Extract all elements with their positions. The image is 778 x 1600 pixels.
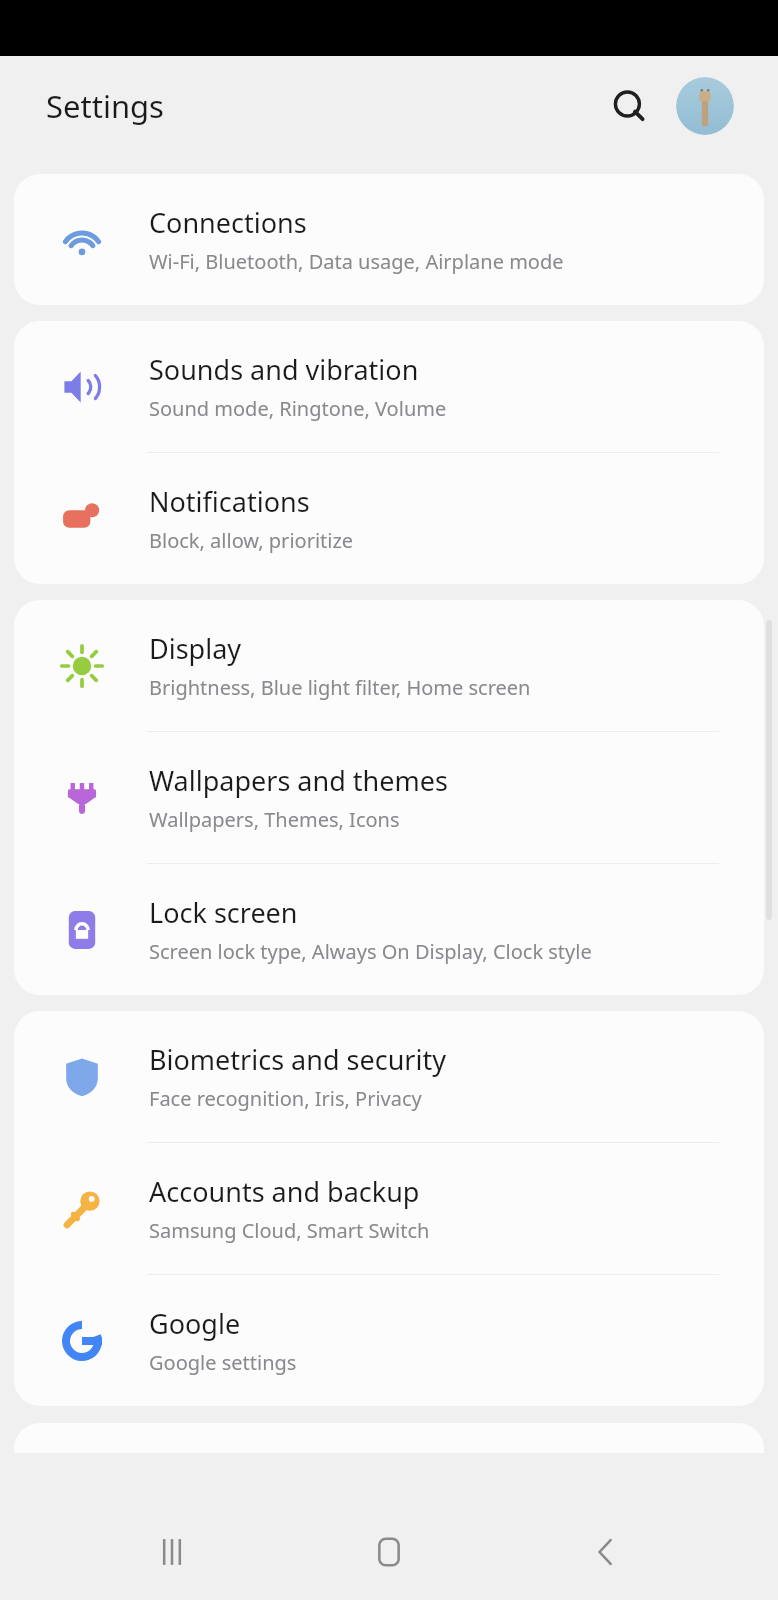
button[interactable]: Home <box>344 1507 434 1597</box>
staticText: Wallpapers and themes <box>149 762 448 799</box>
button[interactable]: Display <box>14 600 764 731</box>
staticText: Lock screen <box>149 894 298 931</box>
button[interactable]: Google <box>14 1275 764 1406</box>
staticText: Settings <box>46 85 164 127</box>
button[interactable]: Notifications <box>14 453 764 584</box>
button[interactable]: Lock screen <box>14 864 764 995</box>
button[interactable]: Search <box>602 79 656 133</box>
staticText: Screen lock type, Always On Display, Clo… <box>149 938 592 965</box>
staticText: Block, allow, prioritize <box>149 527 354 554</box>
button[interactable]: Accounts and backup <box>14 1143 764 1274</box>
staticText: Notifications <box>149 483 310 520</box>
staticText: Samsung Cloud, Smart Switch <box>149 1217 430 1244</box>
button[interactable]: Profile <box>676 77 734 135</box>
button[interactable]: Connections <box>14 174 764 305</box>
staticText: Google settings <box>149 1349 297 1376</box>
staticText: Brightness, Blue light filter, Home scre… <box>149 674 531 701</box>
staticText: Face recognition, Iris, Privacy <box>149 1085 422 1112</box>
staticText: Sounds and vibration <box>149 351 419 388</box>
staticText: Wallpapers, Themes, Icons <box>149 806 400 833</box>
staticText: Display <box>149 630 242 667</box>
staticText: Google <box>149 1305 241 1342</box>
staticText: Connections <box>149 204 307 241</box>
staticText: Wi-Fi, Bluetooth, Data usage, Airplane m… <box>149 248 564 275</box>
button[interactable]: Sounds and vibration <box>14 321 764 452</box>
staticText: Sound mode, Ringtone, Volume <box>149 395 447 422</box>
button[interactable]: Biometrics and security <box>14 1011 764 1142</box>
staticText: Accounts and backup <box>149 1173 420 1210</box>
button[interactable]: Wallpapers and themes <box>14 732 764 863</box>
staticText: Biometrics and security <box>149 1041 446 1078</box>
button[interactable]: Back <box>561 1507 651 1597</box>
button[interactable]: Recents <box>127 1507 217 1597</box>
